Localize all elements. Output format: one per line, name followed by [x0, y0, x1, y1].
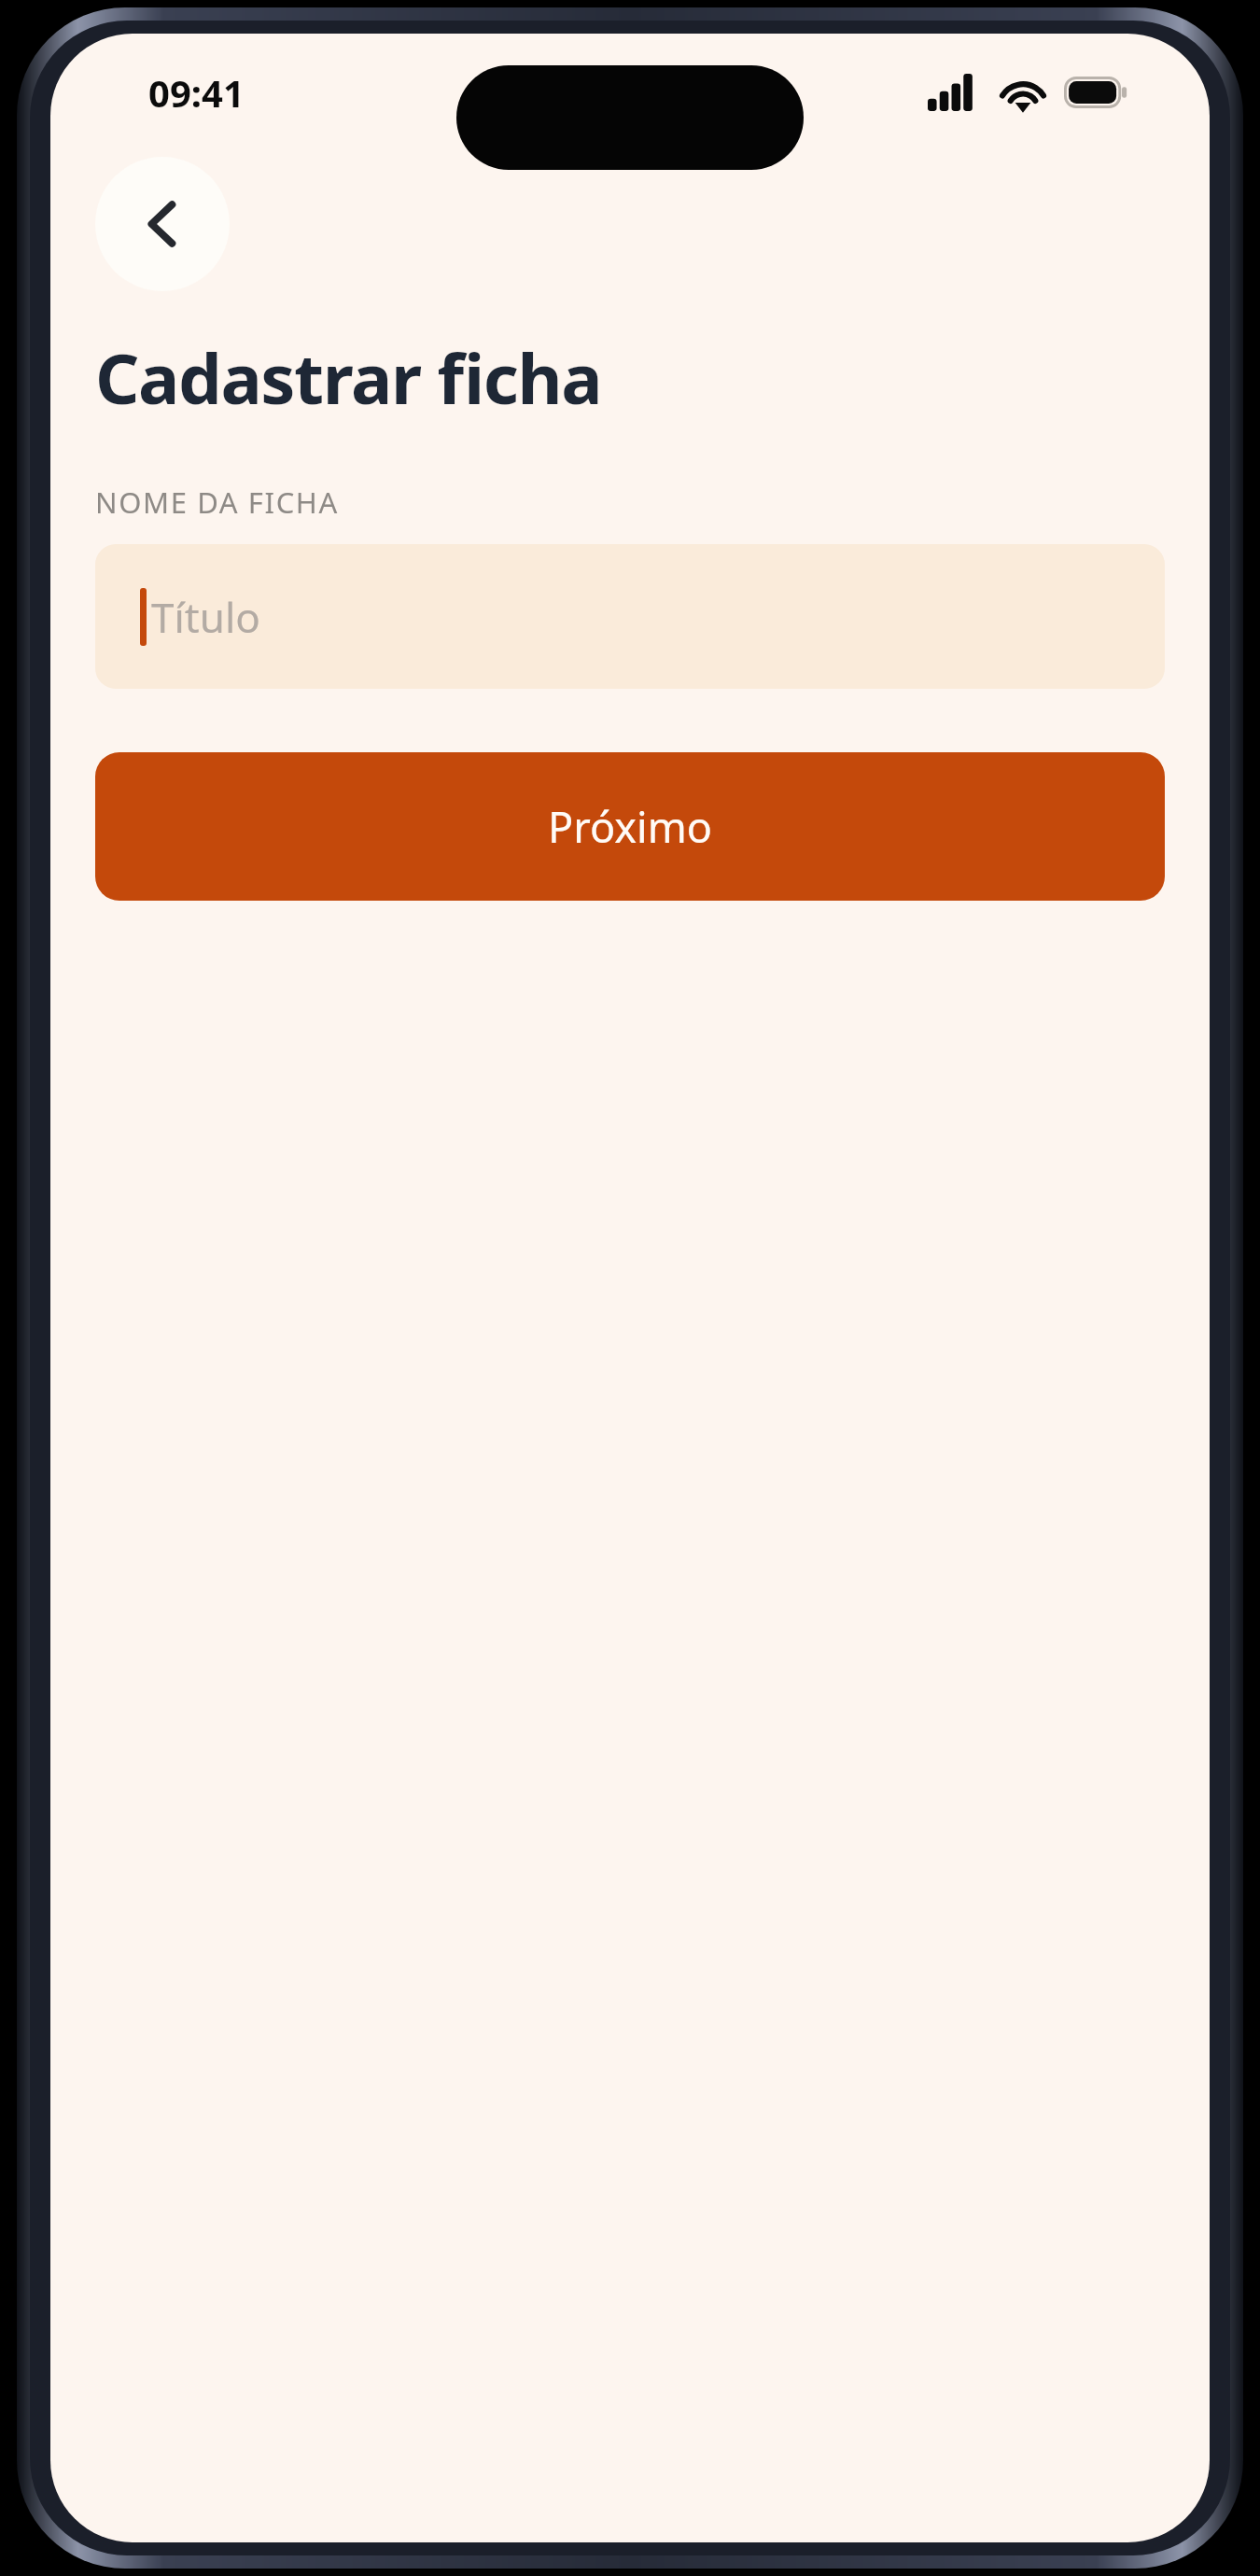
button[interactable]: Back	[95, 157, 230, 291]
staticText: Cadastrar ficha	[95, 330, 602, 425]
button[interactable]: Título	[95, 544, 1165, 689]
staticText: Título	[151, 589, 260, 645]
staticText: 09:41	[148, 67, 245, 118]
staticText: NOME DA FICHA	[95, 483, 339, 522]
button[interactable]: Próximo	[95, 752, 1165, 901]
staticText: Próximo	[548, 798, 712, 855]
